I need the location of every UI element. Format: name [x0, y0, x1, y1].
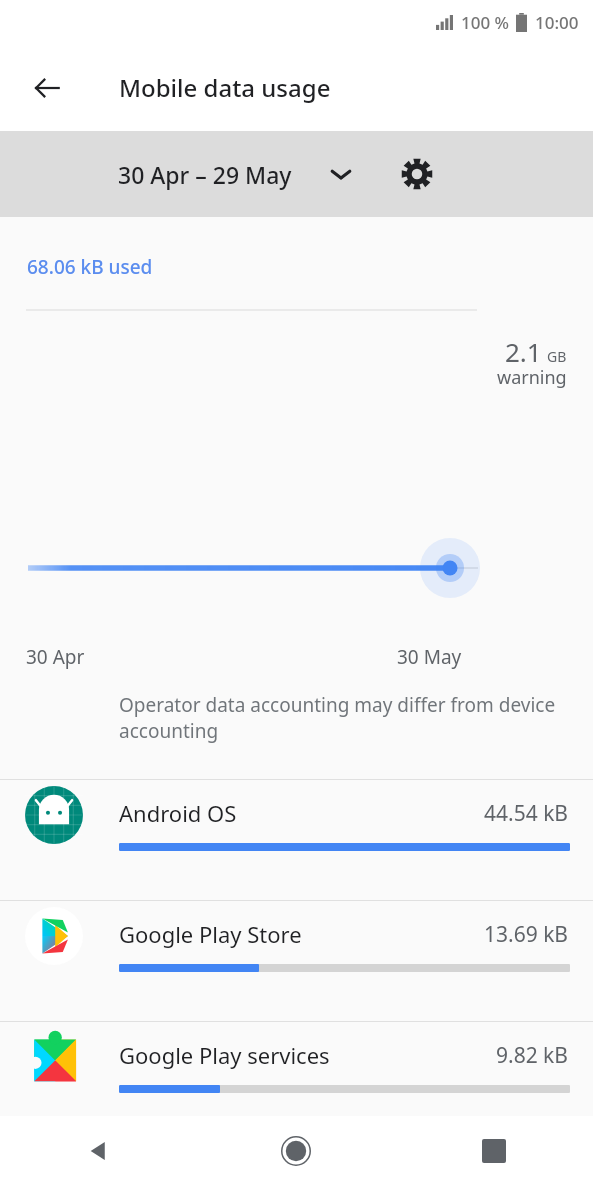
button[interactable]: Back	[0, 1116, 197, 1186]
staticText: 100 %	[461, 11, 510, 34]
button[interactable]: Google Play services	[0, 1022, 593, 1142]
staticText: 9.82 kB	[496, 1041, 568, 1070]
staticText: 10:00	[535, 11, 579, 34]
staticText: 30 May	[397, 644, 462, 670]
button[interactable]: Back	[22, 63, 72, 113]
staticText: GB	[547, 347, 567, 366]
button[interactable]: Recents	[395, 1116, 593, 1186]
staticText: Mobile data usage	[119, 71, 331, 104]
staticText: 30 Apr	[26, 644, 85, 670]
staticText: Android OS	[119, 798, 237, 828]
staticText: 68.06 kB used	[27, 254, 153, 280]
button[interactable]: Home	[197, 1116, 395, 1186]
button[interactable]: 30 Apr – 29 May	[0, 131, 593, 217]
button[interactable]: Settings	[394, 151, 440, 197]
staticText: Operator data accounting may differ from…	[119, 692, 569, 744]
button[interactable]: Android OS	[0, 780, 593, 900]
button[interactable]: Google Play Store	[0, 901, 593, 1021]
staticText: Google Play services	[119, 1040, 330, 1070]
staticText: 30 Apr – 29 May	[118, 159, 292, 190]
staticText: 44.54 kB	[484, 799, 568, 828]
staticText: warning	[497, 365, 567, 390]
staticText: 2.1	[505, 334, 542, 369]
staticText: Google Play Store	[119, 919, 302, 949]
staticText: 13.69 kB	[484, 920, 568, 949]
